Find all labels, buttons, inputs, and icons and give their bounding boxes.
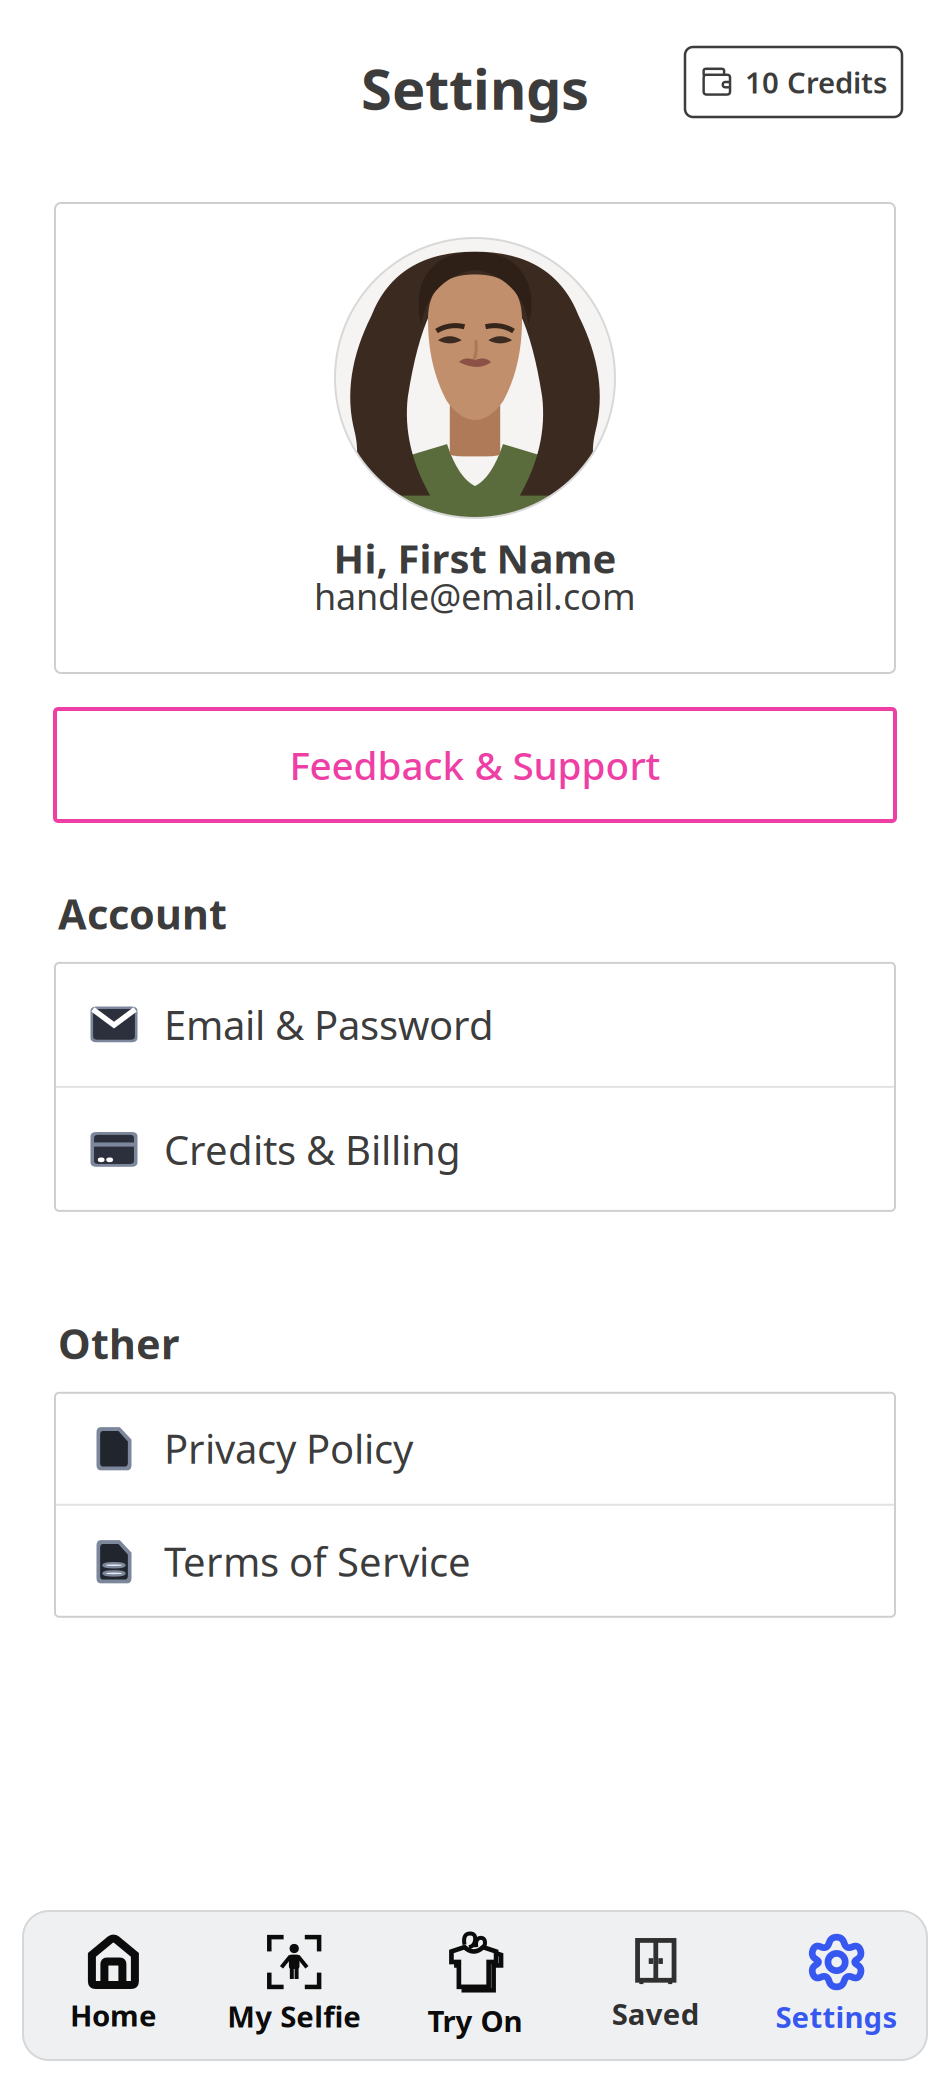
button[interactable]: Saved [565,1911,746,2060]
staticText: Home [70,1995,157,2034]
button[interactable]: 10 Credits [685,47,902,117]
staticText: 10 Credits [745,62,887,101]
button[interactable]: Try On [385,1911,565,2060]
staticText: Credits & Billing [164,1123,461,1176]
staticText: handle@email.com [314,572,636,620]
button[interactable]: Email & Password [55,963,895,1086]
staticText: Account [58,886,227,941]
button[interactable]: Home [23,1911,204,2060]
staticText: Other [58,1316,179,1371]
staticText: Privacy Policy [164,1422,413,1475]
button[interactable]: Credits & Billing [55,1088,895,1211]
button[interactable]: Feedback & Support [55,709,895,821]
staticText: Email & Password [164,998,494,1051]
button[interactable]: Privacy Policy [55,1393,895,1504]
staticText: Feedback & Support [289,739,660,791]
staticText: My Selfie [227,1996,361,2035]
staticText: Try On [427,2001,522,2040]
staticText: Settings [361,51,589,125]
staticText: Settings [776,1997,898,2036]
staticText: Terms of Service [164,1535,471,1588]
staticText: Hi, First Name [333,531,616,584]
button[interactable]: Settings [746,1911,927,2060]
button[interactable]: My Selfie [204,1911,385,2060]
staticText: Saved [612,1994,700,2033]
button[interactable]: Terms of Service [55,1506,895,1617]
